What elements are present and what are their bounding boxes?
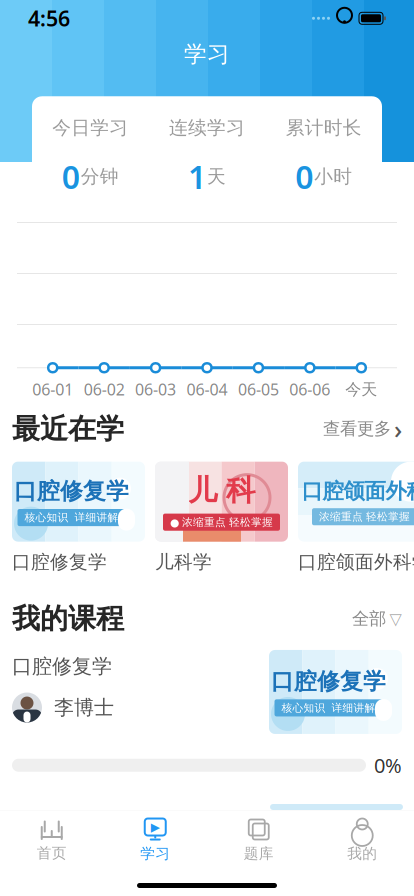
staticText: 0 — [295, 155, 313, 198]
staticText: 0 — [62, 155, 80, 198]
staticText: ▽ — [389, 610, 401, 628]
staticText: 天 — [207, 165, 226, 188]
staticText: 核心知识 详细讲解 — [24, 511, 118, 524]
staticText: 今天 — [345, 379, 377, 399]
staticText: 核心知识 详细讲解 — [281, 701, 375, 714]
staticText: 口腔修复学 — [12, 551, 107, 573]
button[interactable]: 口腔修复学 — [12, 462, 145, 573]
staticText: 全部 — [352, 608, 386, 629]
staticText: 口腔颌面外科学 — [298, 551, 414, 573]
staticText: 连续学习 — [169, 116, 245, 139]
staticText: 儿科学 — [155, 551, 212, 573]
staticText: 题库 — [244, 844, 274, 862]
staticText: 0% — [374, 752, 402, 779]
staticText: 首页 — [37, 844, 67, 862]
staticText: 查看更多 — [323, 418, 391, 439]
staticText: 学习 — [184, 40, 230, 68]
staticText: 06-05 — [238, 379, 279, 400]
button[interactable]: 查看更多 — [313, 408, 402, 450]
staticText: 口腔颌面外科 — [301, 478, 414, 504]
staticText: 4:56 — [28, 4, 70, 32]
staticText: 最近在学 — [12, 412, 124, 446]
staticText: 累计时长 — [286, 116, 362, 139]
button[interactable]: 我的 — [310, 810, 414, 868]
staticText: 小时 — [314, 165, 352, 188]
staticText: 儿 科 — [188, 473, 255, 509]
staticText: 我的课程 — [12, 602, 124, 636]
button[interactable]: ▶ — [103, 810, 207, 868]
staticText: 学习 — [140, 844, 170, 862]
staticText: 我的 — [347, 844, 377, 862]
staticText: 今日学习 — [52, 116, 128, 139]
staticText: › — [394, 412, 402, 446]
button[interactable]: 口腔颌面外科 — [298, 462, 414, 573]
button[interactable]: 口腔修复学 — [0, 650, 414, 779]
staticText: 06-06 — [289, 379, 330, 400]
staticText: 06-04 — [186, 379, 227, 400]
staticText: ▶ — [151, 820, 160, 834]
button[interactable]: 全部 — [342, 604, 402, 633]
button[interactable]: 儿 科 — [155, 462, 288, 573]
staticText: 06-02 — [84, 379, 125, 400]
button[interactable]: 题库 — [207, 810, 310, 868]
staticText: 浓缩重点 轻松掌握 — [319, 510, 410, 523]
staticText: 分钟 — [81, 165, 119, 188]
staticText: 口腔修复学 — [14, 477, 129, 505]
staticText: 口腔修复学 — [12, 654, 112, 679]
staticText: ● 浓缩重点 轻松掌握 — [170, 516, 273, 529]
staticText: 李博士 — [54, 695, 114, 720]
staticText: 口腔修复学 — [271, 667, 386, 695]
staticText: 1 — [188, 155, 206, 198]
button[interactable]: 首页 — [0, 811, 103, 868]
staticText: 06-03 — [135, 379, 176, 400]
staticText: 06-01 — [32, 379, 73, 400]
